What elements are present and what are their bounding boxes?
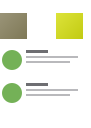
button[interactable]: [56, 13, 83, 39]
button[interactable]: [0, 13, 27, 39]
button[interactable]: [0, 79, 91, 112]
button[interactable]: [0, 46, 91, 79]
